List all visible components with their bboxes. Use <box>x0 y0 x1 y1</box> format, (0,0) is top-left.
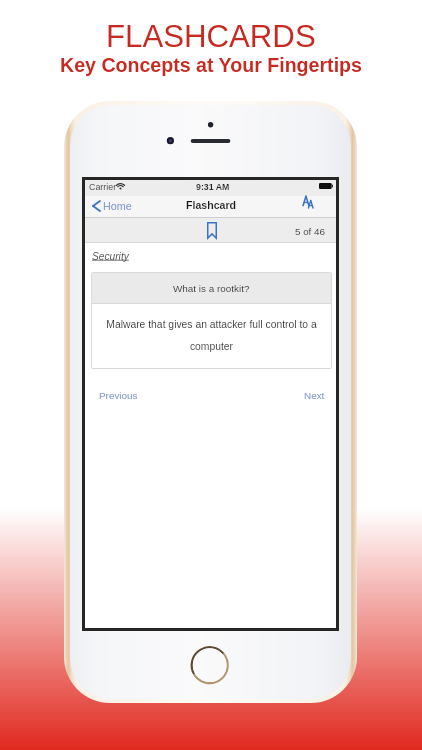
staticText: Previous <box>99 390 138 401</box>
staticText: Flashcard <box>186 199 237 211</box>
button[interactable]: What is a rootkit? <box>92 273 331 368</box>
staticText: Malware that gives an attacker full cont… <box>98 319 325 353</box>
button[interactable]: Text size <box>300 195 315 209</box>
button[interactable]: Home <box>92 199 132 213</box>
staticText: Home <box>103 200 132 212</box>
staticText: What is a rootkit? <box>173 283 250 294</box>
staticText: Next <box>304 390 325 401</box>
staticText: FLASHCARDS <box>106 19 316 54</box>
button[interactable]: Security <box>92 251 129 262</box>
staticText: Carrier <box>89 182 117 192</box>
button[interactable]: Bookmark <box>204 220 219 241</box>
staticText: Key Concepts at Your Fingertips <box>60 54 362 76</box>
staticText: 5 of 46 <box>295 226 325 237</box>
button[interactable]: Previous <box>99 390 138 401</box>
staticText: 9:31 AM <box>196 182 230 192</box>
button[interactable]: Next <box>304 390 325 401</box>
staticText: Security <box>92 251 129 262</box>
